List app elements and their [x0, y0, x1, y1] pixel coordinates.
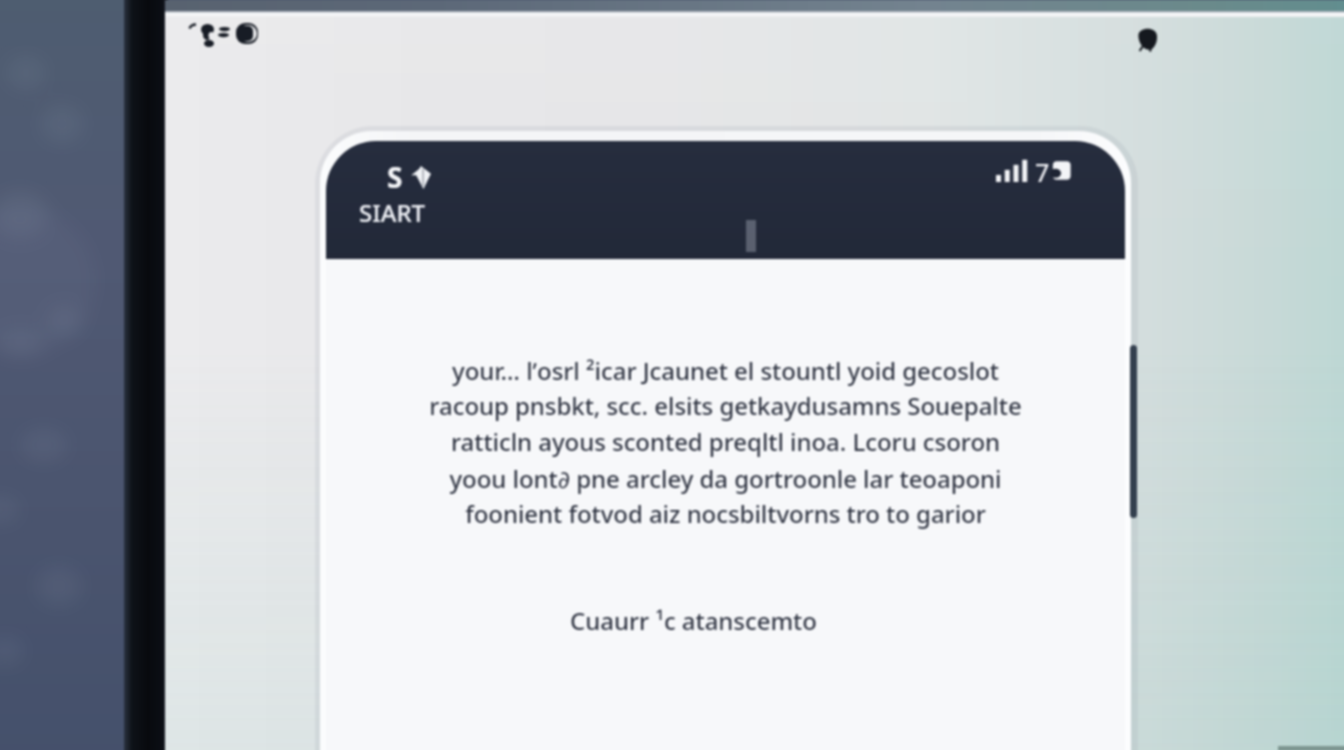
staticText: Cuaurr ¹c atanscemto: [570, 604, 817, 637]
button[interactable]: Menu: [190, 23, 260, 49]
staticText: your… lʼosrl ²icar Jcaunet el stountl yo…: [429, 354, 1022, 530]
staticText: S: [387, 158, 403, 196]
button[interactable]: Power button: [1130, 345, 1137, 518]
button[interactable]: Comment: [1133, 24, 1163, 54]
staticText: 7: [1035, 155, 1050, 189]
staticText: SIART: [359, 196, 426, 229]
